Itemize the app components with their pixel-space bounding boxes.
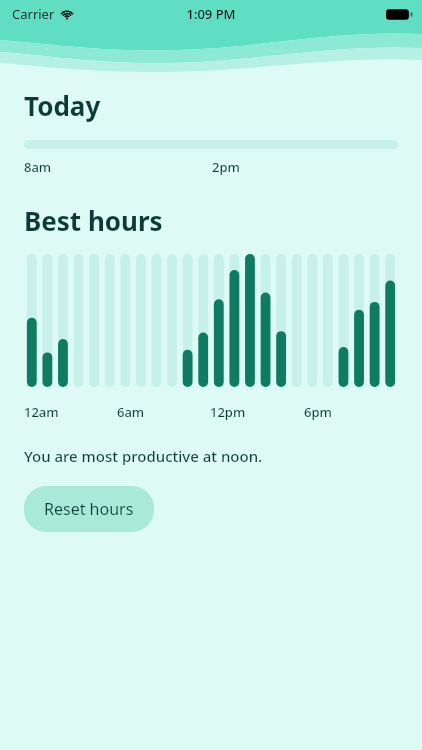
staticText: You are most productive at noon. <box>24 446 263 466</box>
staticText: Reset hours <box>44 498 134 520</box>
staticText: Carrier <box>12 5 55 23</box>
staticText: 6am <box>117 403 145 421</box>
staticText: 12am <box>24 403 59 421</box>
staticText: 6pm <box>304 403 332 421</box>
staticText: 1:09 PM <box>186 5 236 23</box>
staticText: 8am <box>24 158 52 176</box>
staticText: Best hours <box>24 203 163 238</box>
staticText: 12pm <box>210 403 246 421</box>
staticText: Today <box>24 88 101 123</box>
staticText: 2pm <box>212 158 240 176</box>
button[interactable]: Reset hours <box>24 486 154 532</box>
